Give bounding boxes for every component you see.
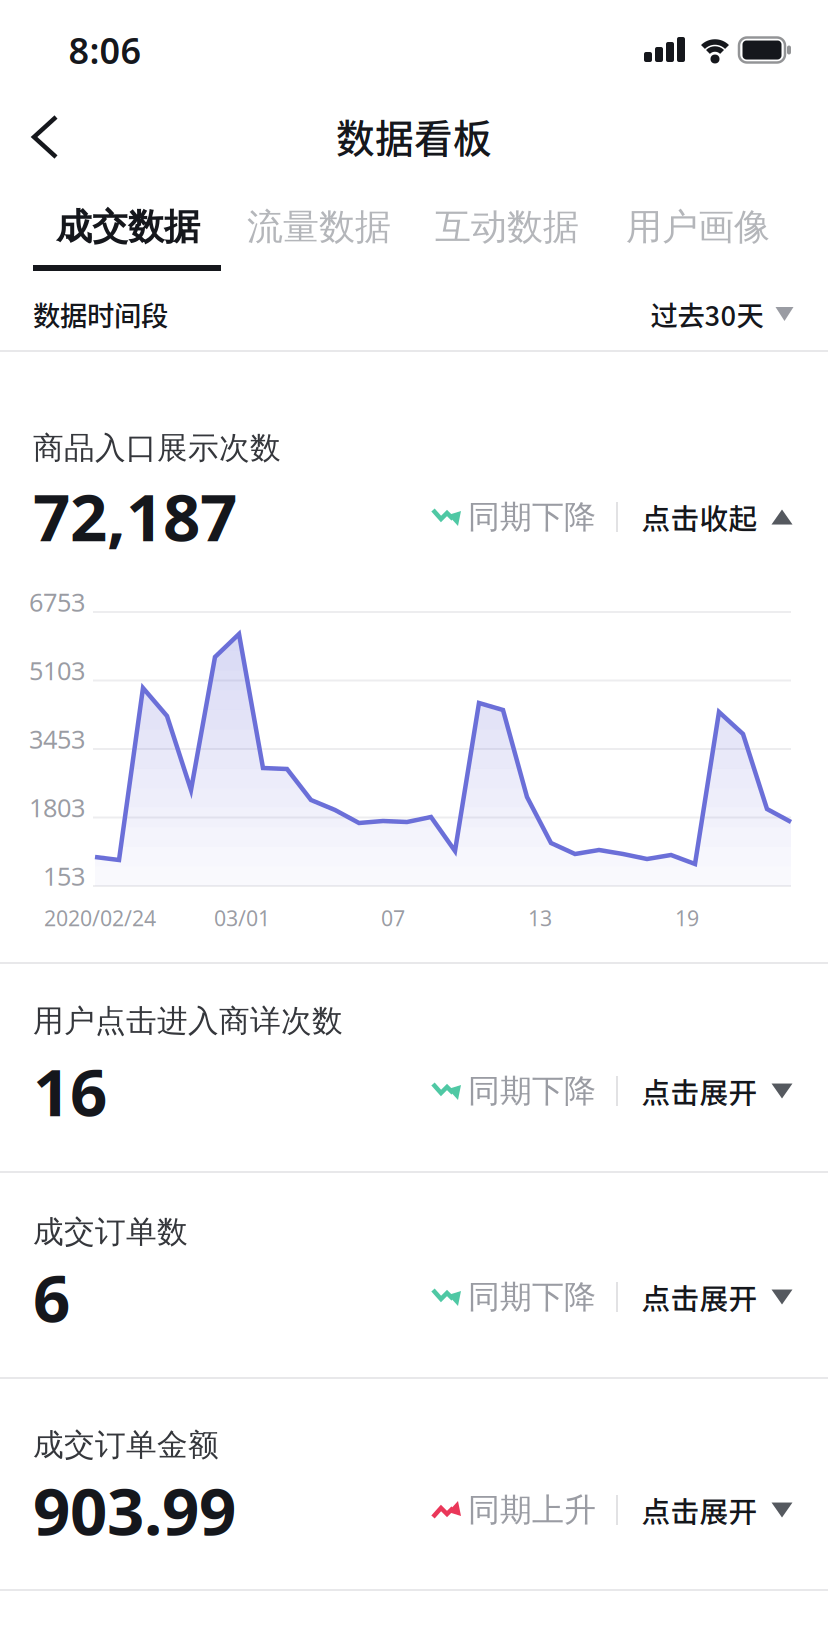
staticText: 2020/02/24 bbox=[44, 904, 156, 932]
staticText: 点击展开 bbox=[641, 1070, 757, 1112]
staticText: 同期下降 bbox=[468, 1071, 596, 1111]
staticText: 互动数据 bbox=[435, 205, 579, 249]
staticText: 流量数据 bbox=[247, 205, 391, 249]
staticText: 16 bbox=[33, 1048, 107, 1134]
staticText: 8:06 bbox=[68, 26, 141, 74]
staticText: 5103 bbox=[29, 654, 85, 687]
button[interactable]: 点击展开 bbox=[641, 1489, 792, 1531]
staticText: 点击展开 bbox=[641, 1276, 757, 1318]
button[interactable]: 点击收起 bbox=[641, 496, 792, 538]
staticText: 19 bbox=[675, 904, 699, 932]
staticText: 1803 bbox=[29, 791, 85, 824]
staticText: 03/01 bbox=[214, 904, 270, 932]
staticText: 153 bbox=[43, 859, 85, 893]
staticText: 数据看板 bbox=[336, 108, 492, 164]
staticText: 成交订单金额 bbox=[33, 1426, 219, 1464]
button[interactable]: 点击展开 bbox=[641, 1276, 792, 1318]
staticText: 13 bbox=[528, 904, 552, 932]
button[interactable]: 流量数据 bbox=[247, 205, 391, 249]
staticText: 商品入口展示次数 bbox=[33, 429, 281, 467]
staticText: 点击展开 bbox=[641, 1489, 757, 1531]
button[interactable]: 互动数据 bbox=[435, 205, 579, 249]
staticText: 3453 bbox=[29, 722, 85, 756]
staticText: 6 bbox=[33, 1254, 70, 1340]
button[interactable]: 过去30天 bbox=[650, 294, 793, 334]
button[interactable]: 用户画像 bbox=[626, 205, 770, 249]
button[interactable]: 点击展开 bbox=[641, 1070, 792, 1112]
button[interactable]: 成交数据 bbox=[56, 205, 200, 249]
staticText: 6753 bbox=[29, 585, 85, 619]
staticText: 同期上升 bbox=[468, 1490, 596, 1530]
staticText: 903.99 bbox=[33, 1467, 236, 1553]
staticText: 点击收起 bbox=[641, 496, 757, 538]
staticText: 数据时间段 bbox=[33, 294, 168, 334]
staticText: 用户点击进入商详次数 bbox=[33, 1002, 343, 1040]
staticText: 同期下降 bbox=[468, 1277, 596, 1317]
button[interactable]: Back bbox=[22, 109, 68, 165]
staticText: 过去30天 bbox=[650, 294, 763, 334]
staticText: 成交数据 bbox=[56, 205, 200, 249]
staticText: 72,187 bbox=[33, 473, 237, 559]
staticText: 成交订单数 bbox=[33, 1213, 188, 1251]
staticText: 07 bbox=[381, 904, 405, 932]
staticText: 同期下降 bbox=[468, 497, 596, 537]
staticText: 用户画像 bbox=[626, 205, 770, 249]
